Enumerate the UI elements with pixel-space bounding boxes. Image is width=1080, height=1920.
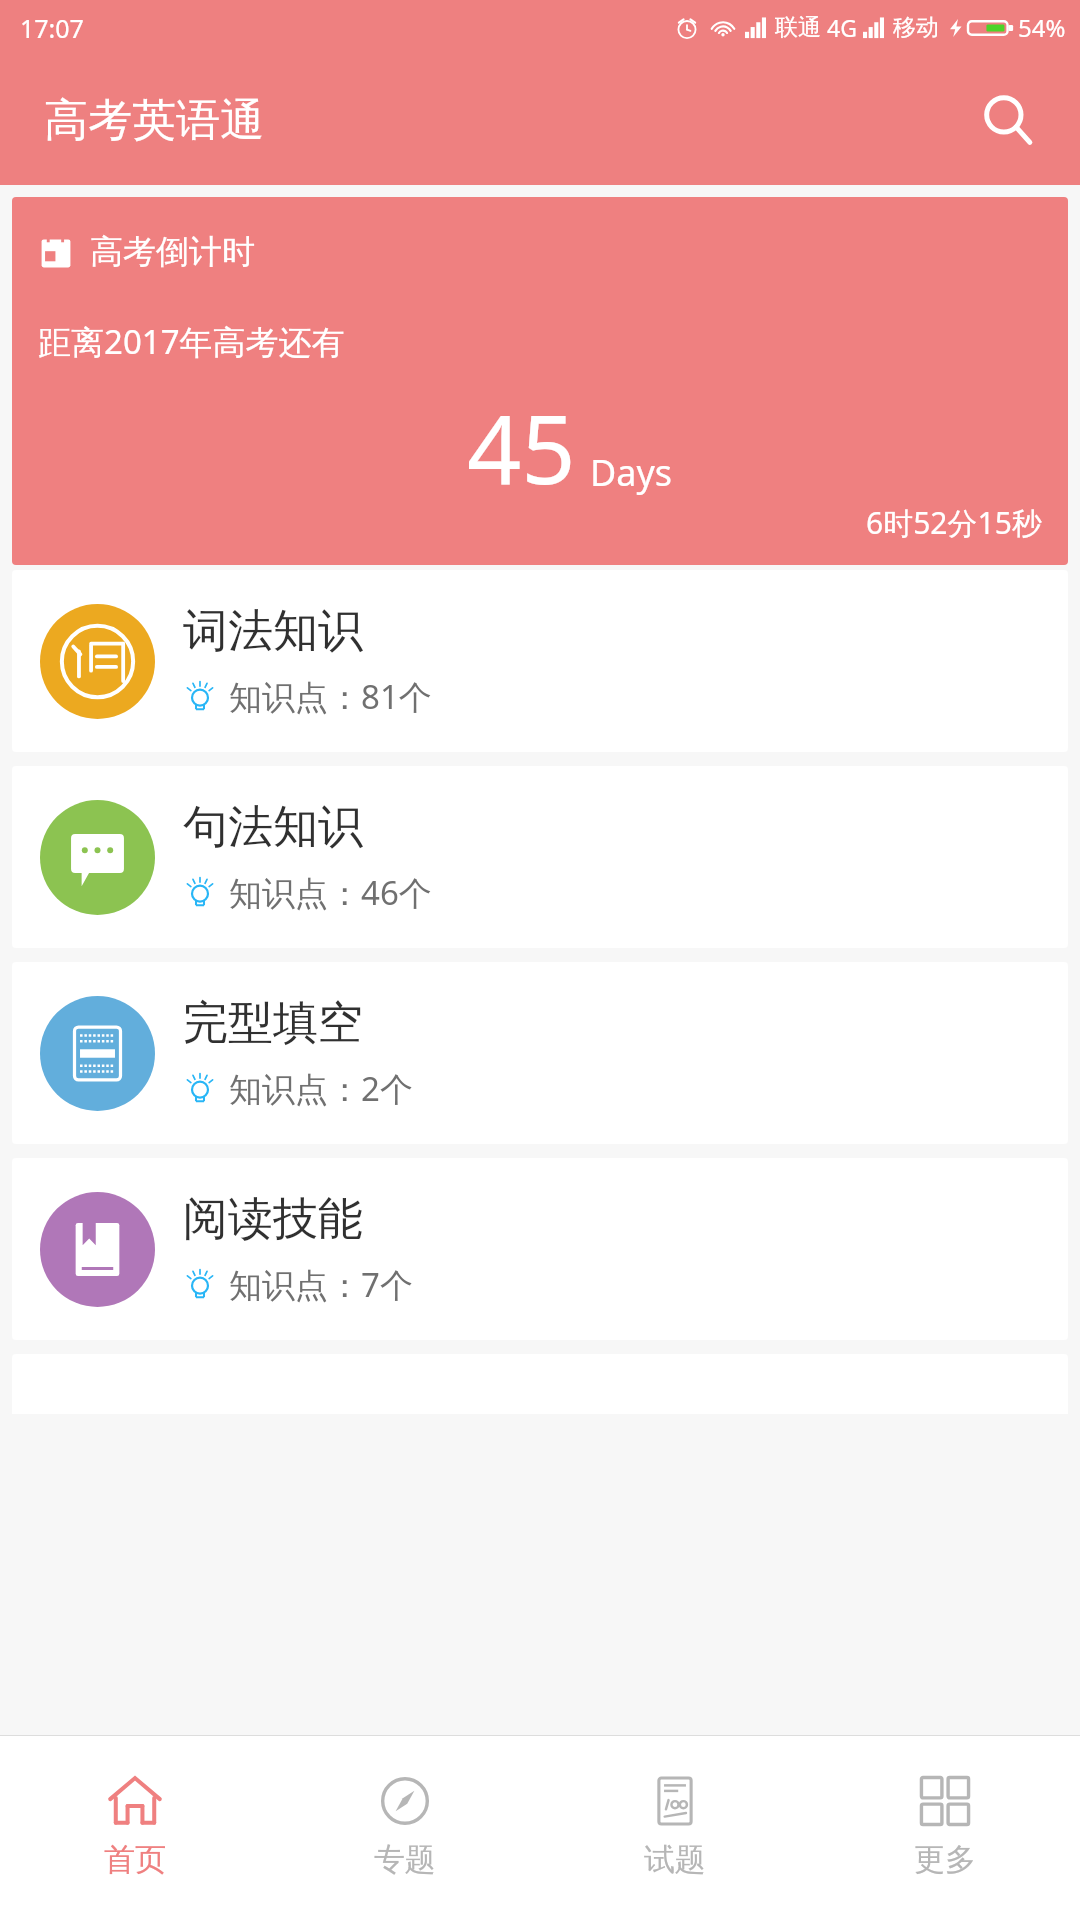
button[interactable]: 完型填空	[12, 962, 1068, 1144]
staticText: 联通	[775, 13, 821, 42]
staticText: 知识点：81个	[229, 674, 432, 719]
staticText: 45	[467, 382, 576, 511]
staticText: 知识点：46个	[229, 870, 432, 915]
staticText: 高考英语通	[44, 93, 264, 148]
button[interactable]: 更多	[810, 1736, 1080, 1920]
button[interactable]: 试题	[540, 1736, 810, 1920]
staticText: 试题	[644, 1840, 706, 1879]
staticText: 首页	[104, 1840, 166, 1879]
staticText: 句法知识	[183, 799, 363, 856]
button[interactable]: 句法知识	[12, 766, 1068, 948]
staticText: 知识点：7个	[229, 1262, 413, 1307]
staticText: 17:07	[20, 11, 84, 45]
staticText: Days	[590, 448, 673, 497]
button[interactable]: Search	[972, 84, 1044, 156]
staticText: 移动	[893, 13, 939, 42]
button[interactable]: 阅读技能	[12, 1158, 1068, 1340]
button[interactable]: 词法知识	[12, 570, 1068, 752]
button[interactable]: 专题	[270, 1736, 540, 1920]
staticText: 更多	[914, 1840, 976, 1879]
staticText: 专题	[374, 1840, 436, 1879]
staticText: 完型填空	[183, 995, 363, 1052]
staticText: 6时52分15秒	[866, 502, 1042, 543]
staticText: 知识点：2个	[229, 1066, 413, 1111]
staticText: 阅读技能	[183, 1191, 363, 1248]
staticText: 4G	[827, 12, 857, 43]
staticText: 距离2017年高考还有	[38, 319, 345, 364]
button[interactable]: 首页	[0, 1736, 270, 1920]
staticText: 高考倒计时	[90, 231, 255, 273]
staticText: 词法知识	[183, 603, 363, 660]
button[interactable]: 高考倒计时	[12, 197, 1068, 565]
staticText: 54%	[1018, 11, 1066, 44]
